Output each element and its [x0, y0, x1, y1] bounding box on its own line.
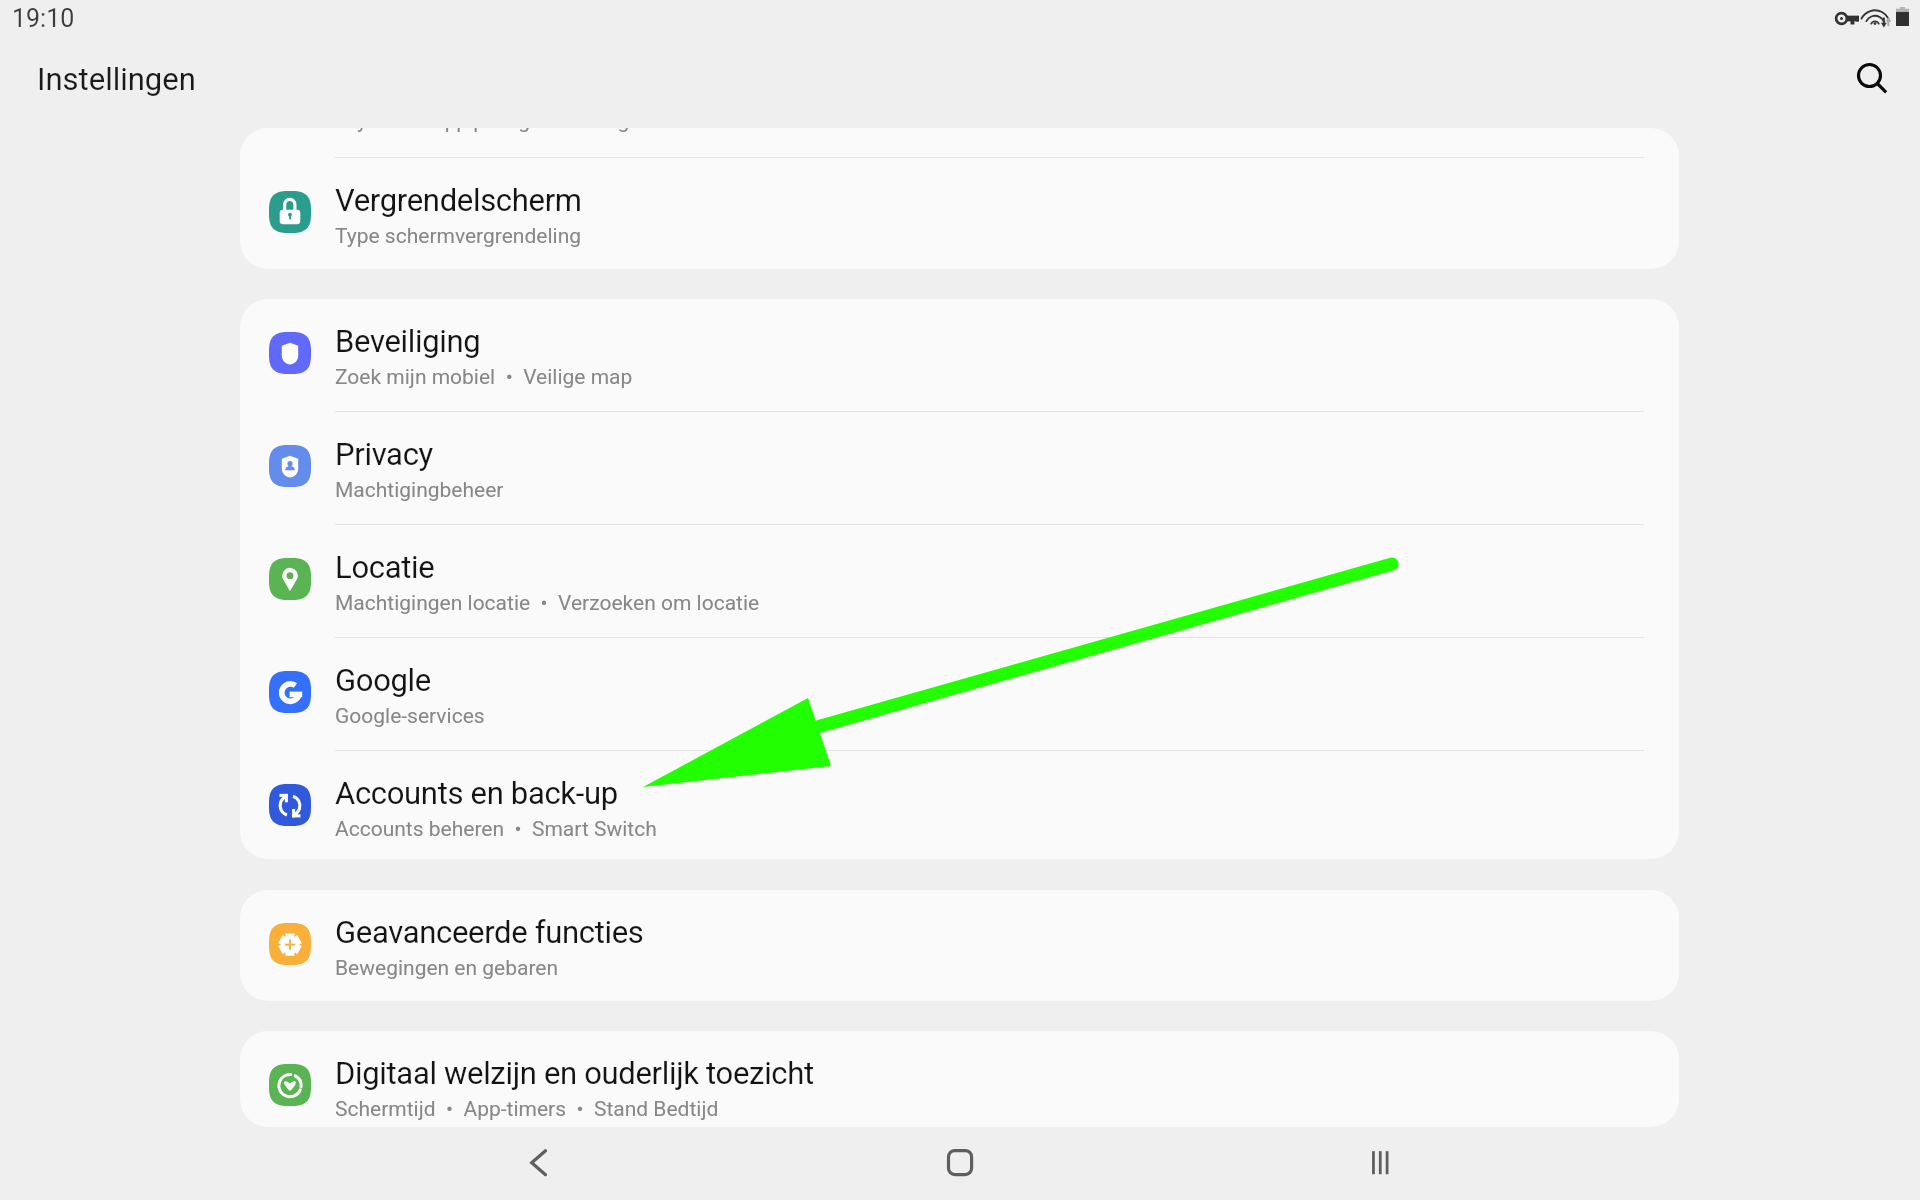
staticText: Accounts en back-up: [335, 775, 618, 811]
staticText: Type schermvergrendeling: [335, 224, 582, 249]
staticText: Google: [335, 662, 431, 698]
staticText: Locatie: [335, 549, 435, 585]
staticText: Machtigingen locatie • Verzoeken om loca…: [335, 591, 760, 616]
staticText: Digitaal welzijn en ouderlijk toezicht: [335, 1055, 814, 1091]
staticText: Beveiliging: [335, 323, 481, 359]
staticText: Machtigingbeheer: [335, 478, 504, 503]
button[interactable]: Google: [240, 638, 1679, 750]
staticText: Schermtijd • App-timers • Stand Bedtijd: [335, 1097, 719, 1122]
staticText: Instellingen: [37, 61, 196, 97]
button[interactable]: Home: [929, 1136, 989, 1196]
staticText: Google-services: [335, 704, 485, 729]
button[interactable]: Vergrendelscherm: [240, 158, 1679, 269]
button[interactable]: Geavanceerde functies: [240, 890, 1679, 1001]
button[interactable]: Recent apps: [1350, 1136, 1410, 1196]
button[interactable]: Privacy: [240, 412, 1679, 524]
staticText: Bewegingen en gebaren: [335, 956, 559, 981]
staticText: Privacy: [335, 436, 433, 472]
staticText: Vergrendelscherm: [335, 182, 582, 218]
staticText: Zoek mijn mobiel • Veilige map: [335, 365, 633, 390]
button[interactable]: Locatie: [240, 525, 1679, 637]
staticText: Accounts beheren • Smart Switch: [335, 817, 657, 842]
button[interactable]: Accounts en back-up: [240, 751, 1679, 859]
button[interactable]: Beveiliging: [240, 299, 1679, 411]
staticText: Lay-out en app-pictogramrastergrootte: [335, 128, 683, 134]
button[interactable]: Search: [1838, 56, 1902, 120]
button[interactable]: Back: [508, 1136, 568, 1196]
staticText: Geavanceerde functies: [335, 914, 644, 950]
staticText: 19:10: [12, 4, 75, 33]
button[interactable]: Digitaal welzijn en ouderlijk toezicht: [240, 1031, 1679, 1127]
